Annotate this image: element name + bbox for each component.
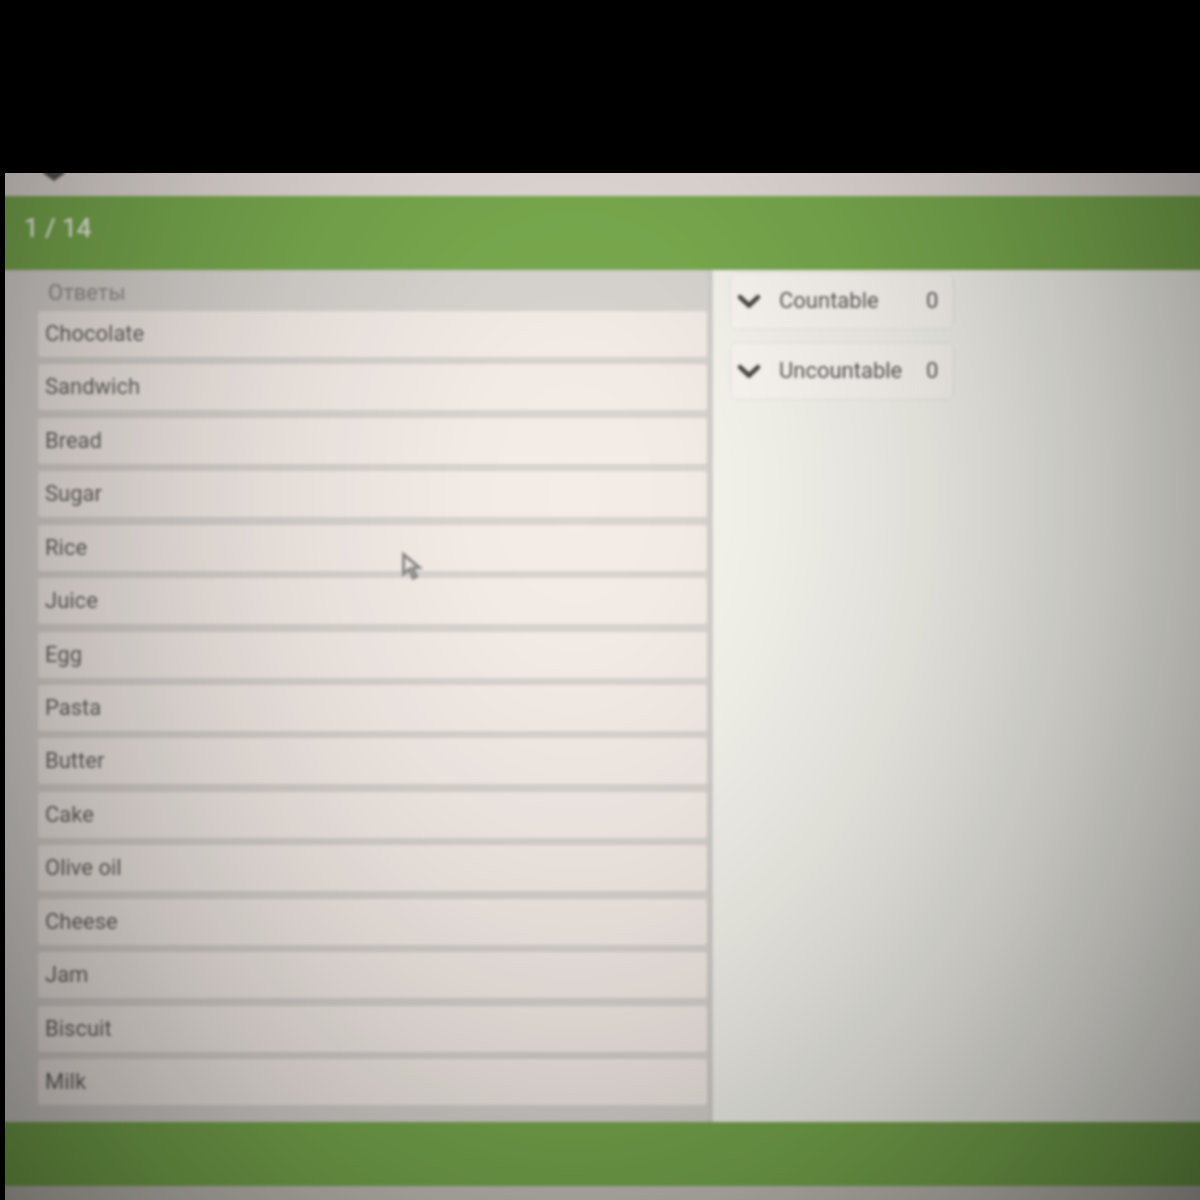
other: Expand Countable <box>735 287 763 315</box>
staticText: Countable <box>779 288 879 314</box>
button[interactable]: Expand Uncountable <box>730 342 954 400</box>
other: Expand Uncountable <box>735 357 763 385</box>
button[interactable]: Juice <box>37 577 708 625</box>
staticText: 0 <box>926 358 939 384</box>
staticText: Cake <box>45 802 94 828</box>
button[interactable]: Cheese <box>37 898 708 946</box>
button[interactable]: Chocolate <box>37 310 708 358</box>
button[interactable]: Bread <box>37 417 708 465</box>
staticText: Olive oil <box>45 855 122 881</box>
button[interactable]: Expand Countable <box>730 272 954 330</box>
button[interactable]: Sandwich <box>37 363 708 411</box>
staticText: Butter <box>45 748 105 774</box>
staticText: Milk <box>45 1069 87 1095</box>
staticText: Sandwich <box>45 374 141 400</box>
button[interactable]: Sugar <box>37 470 708 518</box>
staticText: Juice <box>45 588 98 614</box>
staticText: 0 <box>926 288 939 314</box>
staticText: Jam <box>45 962 89 988</box>
staticText: Uncountable <box>779 358 903 384</box>
button[interactable]: Cake <box>37 791 708 839</box>
staticText: Chocolate <box>45 321 145 347</box>
button[interactable]: Olive oil <box>37 844 708 892</box>
staticText: Pasta <box>45 695 102 721</box>
button[interactable]: Pasta <box>37 684 708 732</box>
staticText: Egg <box>45 642 83 668</box>
staticText: Sugar <box>45 481 102 507</box>
button[interactable]: Milk <box>37 1058 708 1106</box>
button[interactable]: Rice <box>37 524 708 572</box>
other: Menu <box>40 173 68 181</box>
staticText: Biscuit <box>45 1016 112 1042</box>
button[interactable]: Butter <box>37 737 708 785</box>
staticText: Rice <box>45 535 88 561</box>
staticText: 1 / 14 <box>24 213 92 243</box>
button[interactable]: Jam <box>37 951 708 999</box>
staticText: Cheese <box>45 909 118 935</box>
staticText: Bread <box>45 428 102 454</box>
button[interactable]: Biscuit <box>37 1005 708 1053</box>
staticText: Ответы <box>48 280 126 306</box>
button[interactable]: Egg <box>37 631 708 679</box>
